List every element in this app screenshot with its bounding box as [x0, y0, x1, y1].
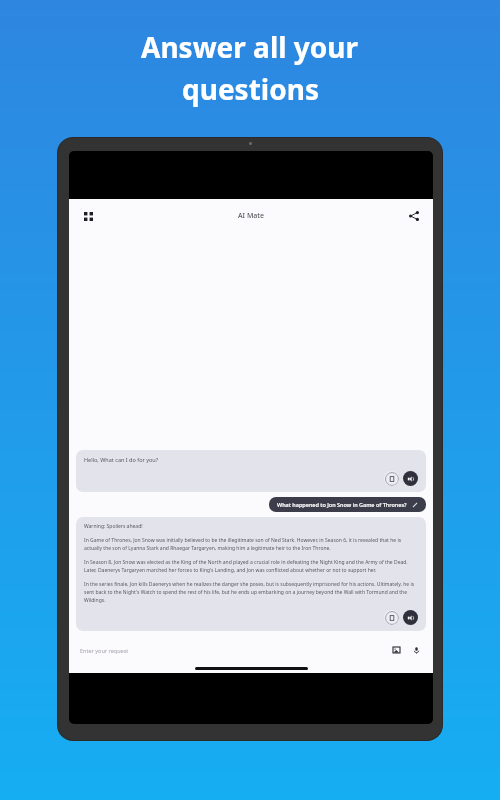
button[interactable]: Share: [403, 205, 425, 227]
button[interactable]: Hello, What can I do for you?: [76, 450, 426, 492]
button[interactable]: What happened to Jon Snow in Game of Thr…: [269, 497, 426, 512]
staticText: In Season 8, Jon Snow was elected as the…: [84, 559, 418, 574]
staticText: Warning: Spoilers ahead!: [84, 523, 143, 530]
staticText: Enter your request: [80, 647, 129, 654]
button[interactable]: Copy: [384, 471, 399, 486]
staticText: Hello, What can I do for you?: [84, 456, 159, 463]
button[interactable]: Read aloud: [403, 471, 418, 486]
button[interactable]: Dashboard: [77, 205, 99, 227]
button[interactable]: Read aloud: [403, 610, 418, 625]
button[interactable]: Enter your request: [69, 637, 433, 663]
staticText: In the series finale, Jon kills Daenerys…: [84, 581, 418, 604]
button[interactable]: Copy: [384, 610, 399, 625]
button[interactable]: Voice input: [411, 645, 422, 656]
staticText: What happened to Jon Snow in Game of Thr…: [277, 501, 407, 508]
other: Edit: [412, 502, 418, 508]
staticText: In Game of Thrones, Jon Snow was initial…: [84, 537, 418, 552]
staticText: questions: [182, 70, 319, 108]
staticText: AI Mate: [238, 211, 265, 221]
button[interactable]: Warning: Spoilers ahead!: [76, 517, 426, 631]
button[interactable]: Attach image: [391, 645, 402, 656]
staticText: Answer all your: [141, 28, 359, 66]
